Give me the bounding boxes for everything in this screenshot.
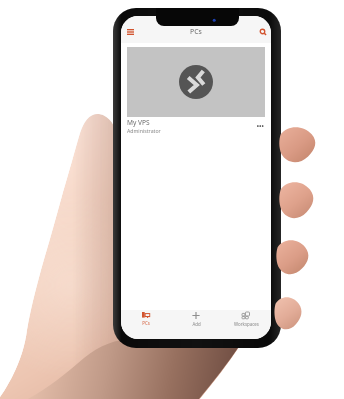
button[interactable]: Search: [256, 25, 270, 39]
staticText: My VPS: [127, 118, 150, 127]
button[interactable]: [127, 47, 265, 117]
staticText: Administrator: [127, 127, 161, 134]
button[interactable]: Add: [171, 310, 221, 339]
staticText: Add: [192, 321, 201, 327]
button[interactable]: Menu: [123, 25, 137, 39]
button[interactable]: PCs: [121, 310, 171, 339]
staticText: Workspaces: [234, 321, 259, 327]
button[interactable]: Workspaces: [221, 310, 271, 339]
button[interactable]: More options: [253, 119, 267, 133]
staticText: PCs: [190, 27, 202, 36]
staticText: PCs: [142, 320, 150, 326]
